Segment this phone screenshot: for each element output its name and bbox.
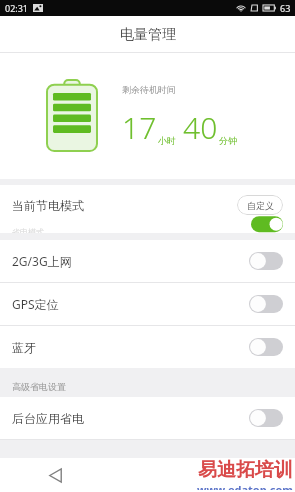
staticText: 02:31 <box>5 2 29 14</box>
button[interactable]: Toggle <box>249 338 283 356</box>
staticText: www.edatop.com <box>197 482 293 490</box>
staticText: 电量管理 <box>120 26 176 44</box>
staticText: 63 <box>280 2 291 14</box>
button[interactable]: Toggle <box>249 295 283 313</box>
button[interactable]: 省电模式 <box>0 225 295 233</box>
staticText: 当前节电模式 <box>12 198 84 213</box>
button[interactable]: Toggle <box>249 409 283 427</box>
staticText: 易迪拓培训 <box>198 458 293 482</box>
button[interactable]: GPS定位 <box>0 283 295 325</box>
button[interactable]: 当前节电模式 <box>0 185 295 225</box>
staticText: 剩余待机时间 <box>122 84 176 95</box>
staticText: GPS定位 <box>12 296 59 312</box>
staticText: 分钟 <box>219 135 237 146</box>
staticText: 后台应用省电 <box>12 411 84 426</box>
button[interactable]: 蓝牙 <box>0 326 295 368</box>
button[interactable]: Back <box>42 462 68 488</box>
staticText: 高级省电设置 <box>12 381 66 392</box>
button[interactable]: 2G/3G上网 <box>0 240 295 282</box>
staticText: 蓝牙 <box>12 340 36 355</box>
button[interactable]: 后台应用省电 <box>0 397 295 439</box>
staticText: 2G/3G上网 <box>12 253 72 269</box>
staticText: 自定义 <box>247 200 274 211</box>
staticText: 17 <box>122 107 157 148</box>
staticText: 小时 <box>158 135 176 146</box>
staticText: 省电模式 <box>12 227 44 233</box>
button[interactable]: 自定义 <box>237 195 283 215</box>
staticText: 40 <box>183 107 218 148</box>
button[interactable]: Toggle <box>249 252 283 270</box>
